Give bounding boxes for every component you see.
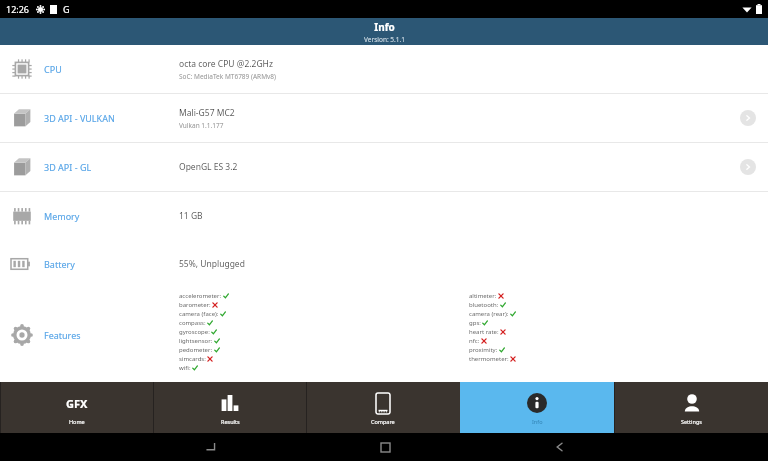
staticText: accelerometer: xyxy=(179,292,222,300)
staticText: Mali-G57 MC2 xyxy=(179,107,235,119)
other: Info xyxy=(527,393,547,413)
staticText: Results xyxy=(221,418,240,425)
button[interactable]: Back xyxy=(550,437,570,457)
staticText: Info xyxy=(532,418,543,425)
staticText: lightsensor: xyxy=(179,337,213,345)
staticText: G xyxy=(63,3,70,15)
staticText: octa core CPU @2.2GHz xyxy=(179,58,273,70)
staticText: pedometer: xyxy=(179,346,213,354)
staticText: Features xyxy=(44,329,81,341)
staticText: 12:26 xyxy=(6,3,30,15)
staticText: Memory xyxy=(44,210,179,222)
staticText: gps: xyxy=(469,319,481,327)
other: Compare xyxy=(376,393,390,414)
staticText: OpenGL ES 3.2 xyxy=(179,161,238,173)
staticText: bluetooth: xyxy=(469,301,499,309)
staticText: nfc: xyxy=(469,337,480,345)
staticText: 3D API - VULKAN xyxy=(44,112,179,124)
button[interactable]: Home xyxy=(375,437,395,457)
staticText: SoC: MediaTek MT6789 (ARMv8) xyxy=(179,72,276,81)
button[interactable]: Keyboard xyxy=(200,437,220,457)
button[interactable]: Results xyxy=(153,382,306,433)
button[interactable]: 3D API - GL xyxy=(0,143,768,191)
button[interactable]: 3D API - VULKAN xyxy=(0,94,768,142)
staticText: Compare xyxy=(371,418,395,425)
staticText: barometer: xyxy=(179,301,211,309)
staticText: 55%, Unplugged xyxy=(179,258,245,270)
staticText: CPU xyxy=(44,63,179,75)
staticText: wifi: xyxy=(179,364,191,372)
button[interactable]: GFX xyxy=(0,382,153,433)
staticText: GFX xyxy=(66,396,88,411)
staticText: thermometer: xyxy=(469,355,509,363)
staticText: heart rate: xyxy=(469,328,499,336)
button[interactable]: Settings xyxy=(614,382,768,433)
button[interactable]: Details xyxy=(740,159,756,175)
staticText: compass: xyxy=(179,319,206,327)
staticText: Vulkan 1.1.177 xyxy=(179,121,224,130)
staticText: Settings xyxy=(681,418,702,425)
other: Results xyxy=(220,393,240,413)
staticText: Info xyxy=(374,20,395,34)
staticText: Version: 5.1.1 xyxy=(364,35,405,44)
staticText: altimeter: xyxy=(469,292,497,300)
staticText: 11 GB xyxy=(179,210,203,222)
staticText: gyroscope: xyxy=(179,328,210,336)
button[interactable]: Compare xyxy=(306,382,460,433)
staticText: camera (rear): xyxy=(469,310,509,318)
staticText: Battery xyxy=(44,258,179,270)
button[interactable]: Details xyxy=(740,110,756,126)
staticText: 3D API - GL xyxy=(44,161,179,173)
staticText: simcards: xyxy=(179,355,206,363)
button[interactable]: Memory xyxy=(0,192,768,240)
staticText: Home xyxy=(69,418,85,425)
button[interactable]: Battery xyxy=(0,240,768,288)
button[interactable]: Info xyxy=(460,382,614,433)
staticText: proximity: xyxy=(469,346,498,354)
staticText: camera (face): xyxy=(179,310,219,318)
button[interactable]: Features xyxy=(0,288,768,382)
button[interactable]: CPU xyxy=(0,45,768,93)
other: Settings xyxy=(682,393,702,413)
